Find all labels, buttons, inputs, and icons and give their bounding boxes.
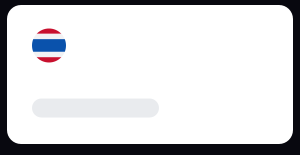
button[interactable]: Thailand	[7, 5, 293, 144]
